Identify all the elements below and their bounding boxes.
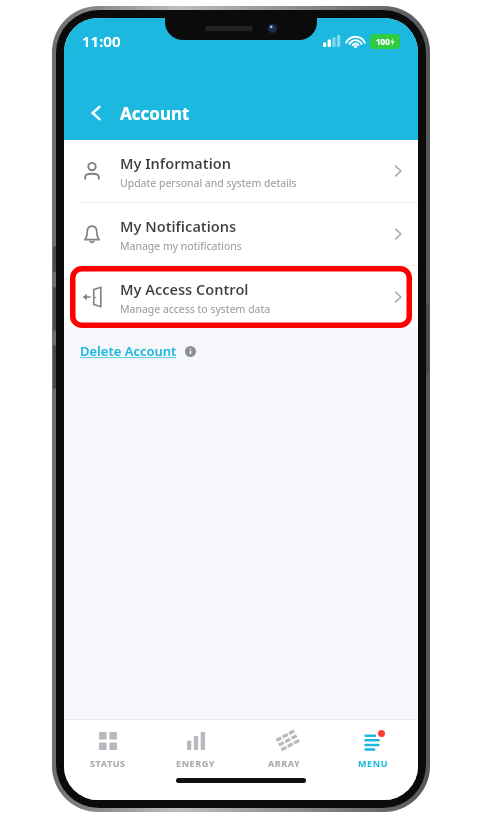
staticText: Update personal and system details [120,176,297,190]
staticText: My Notifications [120,216,237,236]
button[interactable]: ARRAY [240,720,329,778]
staticText: 100 [376,36,390,47]
staticText: Delete Account [80,342,177,360]
button[interactable]: My Access Control [64,266,418,328]
button[interactable]: My Notifications [64,203,418,265]
button[interactable]: Back [80,96,114,130]
button[interactable]: MENU [329,720,418,778]
staticText: ENERGY [176,757,216,769]
staticText: MENU [358,757,389,769]
staticText: Manage my notifications [120,239,242,253]
staticText: Account [120,102,190,125]
button[interactable]: ENERGY [152,720,240,778]
button[interactable]: My Information [64,140,418,202]
staticText: STATUS [90,757,126,769]
staticText: My Information [120,153,232,173]
button[interactable]: Delete Account [80,342,196,360]
staticText: My Access Control [120,279,249,299]
staticText: 11:00 [82,31,121,51]
staticText: Manage access to system data [120,302,271,316]
button[interactable]: STATUS [64,720,152,778]
staticText: ARRAY [268,757,301,769]
